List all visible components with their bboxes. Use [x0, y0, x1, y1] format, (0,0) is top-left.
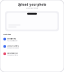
staticText: Face a window — [7, 40, 17, 42]
staticText: Show your face — [7, 54, 18, 56]
staticText: No sunglasses — [7, 52, 18, 54]
staticText: Look at camera — [7, 45, 19, 47]
staticText: Good lighting — [7, 38, 16, 40]
staticText: Upload your photo — [17, 3, 46, 6]
button[interactable]: Look at camera — [3, 45, 61, 49]
staticText: Photo tips — [3, 34, 11, 35]
staticText: Use a clear photo — [26, 7, 38, 9]
button[interactable]: No sunglasses — [3, 52, 61, 56]
button[interactable]: Good lighting — [3, 38, 61, 41]
